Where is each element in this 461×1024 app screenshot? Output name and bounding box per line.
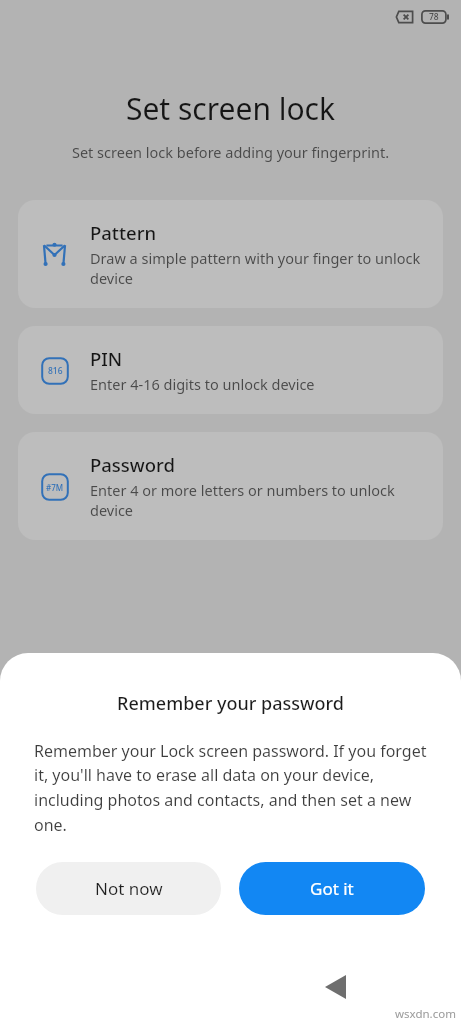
staticText: Set screen lock before adding your finge… — [0, 142, 461, 162]
button[interactable]: Got it — [239, 862, 425, 915]
staticText: Pattern — [90, 220, 157, 245]
button[interactable]: Pattern — [18, 200, 443, 308]
staticText: Draw a simple pattern with your finger t… — [90, 248, 429, 288]
button[interactable]: Not now — [36, 862, 221, 915]
staticText: Enter 4-16 digits to unlock device — [90, 374, 315, 394]
staticText: 78 — [429, 11, 439, 23]
staticText: Enter 4 or more letters or numbers to un… — [90, 480, 429, 520]
staticText: Not now — [95, 877, 163, 900]
staticText: Remember your password — [0, 691, 461, 716]
staticText: Password — [90, 452, 176, 477]
staticText: Set screen lock — [0, 88, 461, 129]
button[interactable]: #7M — [18, 432, 443, 540]
staticText: wsxdn.com — [395, 1006, 456, 1022]
staticText: Got it — [310, 877, 354, 900]
staticText: #7M — [46, 482, 64, 493]
staticText: 816 — [48, 365, 63, 377]
button[interactable]: Back — [313, 965, 357, 1009]
staticText: Remember your Lock screen password. If y… — [34, 740, 427, 836]
staticText: PIN — [90, 346, 123, 371]
button[interactable]: 816 — [18, 326, 443, 414]
